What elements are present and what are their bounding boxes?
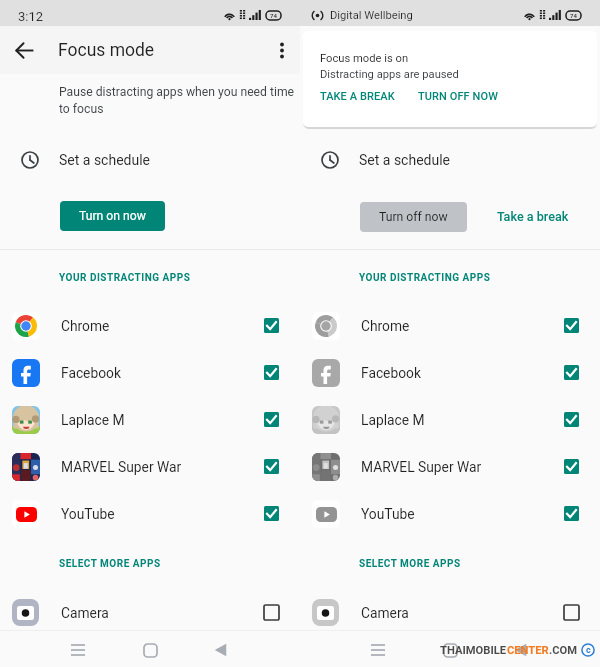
button[interactable]: Uncheck Facebook: [564, 365, 579, 380]
staticText: Chrome: [61, 318, 110, 334]
staticText: Take a break: [497, 209, 569, 224]
button[interactable]: More options: [267, 35, 297, 65]
button[interactable]: Uncheck YouTube: [264, 506, 279, 521]
staticText: 74: [270, 12, 277, 19]
staticText: Facebook: [61, 365, 121, 381]
staticText: MARVEL Super War: [361, 459, 482, 475]
button[interactable]: YouTube: [300, 490, 600, 537]
staticText: Camera: [361, 605, 409, 621]
staticText: Chrome: [361, 318, 410, 334]
button[interactable]: Uncheck Facebook: [264, 365, 279, 380]
button[interactable]: Facebook: [300, 349, 600, 396]
button[interactable]: Uncheck YouTube: [564, 506, 579, 521]
staticText: Digital Wellbeing: [330, 9, 413, 22]
staticText: Pause distracting apps when you need tim…: [59, 85, 300, 116]
staticText: MARVEL Super War: [61, 459, 182, 475]
staticText: SELECT MORE APPS: [359, 558, 461, 570]
staticText: YouTube: [61, 506, 115, 522]
button[interactable]: MARVEL Super War: [0, 443, 300, 490]
staticText: Facebook: [361, 365, 421, 381]
button[interactable]: Turn off now: [360, 202, 467, 232]
button[interactable]: Uncheck MARVEL Super War: [264, 459, 279, 474]
button[interactable]: Recents: [62, 634, 94, 666]
button[interactable]: YouTube: [0, 490, 300, 537]
staticText: YOUR DISTRACTING APPS: [359, 272, 491, 284]
button[interactable]: Back: [504, 634, 536, 666]
staticText: Laplace M: [61, 412, 125, 428]
staticText: Set a schedule: [359, 152, 451, 168]
staticText: Turn on now: [79, 209, 146, 223]
button[interactable]: Laplace M: [0, 396, 300, 443]
button[interactable]: Check Camera: [564, 605, 579, 620]
staticText: YOUR DISTRACTING APPS: [59, 272, 191, 284]
staticText: 3:12: [18, 9, 44, 24]
button[interactable]: Set a schedule: [300, 142, 600, 178]
button[interactable]: Uncheck Laplace M: [264, 412, 279, 427]
staticText: SELECT MORE APPS: [59, 558, 161, 570]
staticText: TURN OFF NOW: [418, 90, 499, 103]
button[interactable]: Camera: [0, 589, 300, 636]
button[interactable]: Uncheck Chrome: [264, 318, 279, 333]
button[interactable]: Back: [9, 35, 39, 65]
button[interactable]: Facebook: [0, 349, 300, 396]
staticText: Focus mode is on: [320, 52, 409, 65]
staticText: .COM: [549, 644, 578, 657]
staticText: Distracting apps are paused: [320, 68, 459, 81]
staticText: Focus mode: [58, 40, 155, 61]
button[interactable]: Chrome: [300, 302, 600, 349]
button[interactable]: Back: [204, 634, 236, 666]
button[interactable]: Uncheck Laplace M: [564, 412, 579, 427]
staticText: Laplace M: [361, 412, 425, 428]
button[interactable]: Set a schedule: [0, 142, 300, 178]
staticText: TAKE A BREAK: [320, 90, 395, 103]
staticText: 74: [570, 12, 577, 19]
button[interactable]: Take a break: [489, 201, 577, 232]
staticText: Set a schedule: [59, 152, 151, 168]
staticText: YouTube: [361, 506, 415, 522]
button[interactable]: Laplace M: [300, 396, 600, 443]
button[interactable]: TAKE A BREAK: [312, 85, 403, 108]
button[interactable]: Home: [134, 634, 166, 666]
button[interactable]: Camera: [300, 589, 600, 636]
staticText: THAIMOBILE: [440, 644, 507, 657]
button[interactable]: MARVEL Super War: [300, 443, 600, 490]
button[interactable]: TURN OFF NOW: [410, 85, 507, 108]
button[interactable]: Uncheck MARVEL Super War: [564, 459, 579, 474]
button[interactable]: Focus mode is on: [303, 31, 597, 127]
button[interactable]: Uncheck Chrome: [564, 318, 579, 333]
button[interactable]: Turn on now: [60, 201, 165, 231]
button[interactable]: Recents: [362, 634, 394, 666]
staticText: CENTER: [507, 644, 549, 657]
staticText: Camera: [61, 605, 109, 621]
button[interactable]: Chrome: [0, 302, 300, 349]
staticText: c: [586, 645, 591, 656]
button[interactable]: Check Camera: [264, 605, 279, 620]
staticText: Turn off now: [379, 210, 448, 224]
button[interactable]: Home: [434, 634, 466, 666]
